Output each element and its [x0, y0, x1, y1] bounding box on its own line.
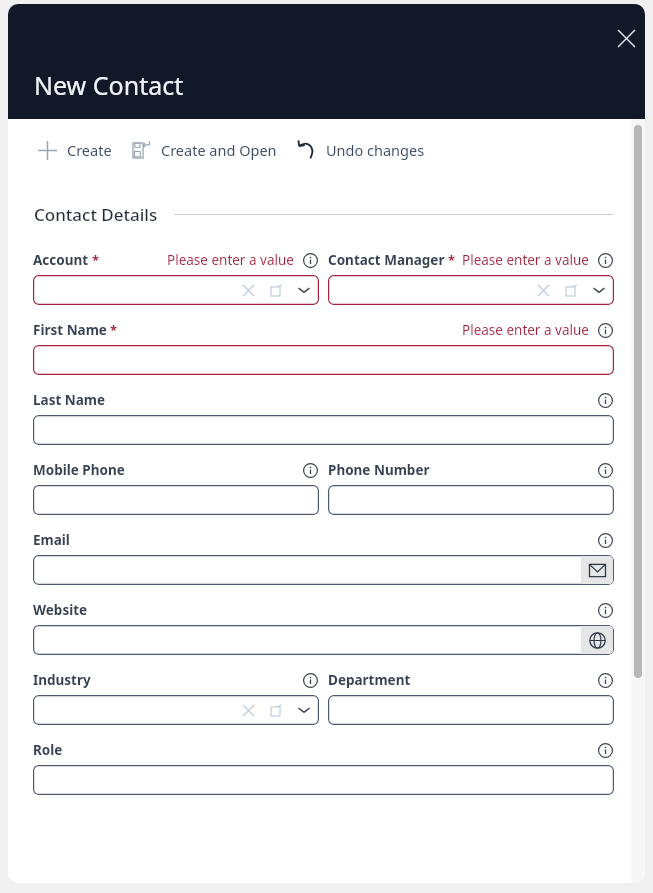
staticText: Website: [33, 601, 88, 619]
staticText: First Name: [33, 321, 107, 339]
button[interactable]: Create: [36, 135, 112, 165]
button[interactable]: Information: [596, 741, 614, 759]
button[interactable]: Information: [596, 601, 614, 619]
button[interactable]: Information: [596, 461, 614, 479]
staticText: Role: [33, 741, 63, 759]
button[interactable]: [33, 485, 319, 515]
staticText: Last Name: [33, 391, 106, 409]
staticText: *: [448, 251, 456, 269]
button[interactable]: Information: [301, 461, 319, 479]
staticText: Account: [33, 251, 89, 269]
button[interactable]: Information: [596, 671, 614, 689]
staticText: Create: [67, 140, 112, 160]
button[interactable]: Information: [596, 251, 614, 269]
button[interactable]: Email: [33, 555, 614, 585]
staticText: Industry: [33, 671, 91, 689]
button[interactable]: [328, 485, 614, 515]
button[interactable]: [33, 695, 319, 725]
button[interactable]: Create and Open: [130, 135, 277, 165]
button[interactable]: Undo changes: [295, 135, 425, 165]
staticText: Mobile Phone: [33, 461, 125, 479]
staticText: Contact Details: [34, 203, 158, 226]
staticText: *: [92, 251, 100, 269]
staticText: Undo changes: [326, 140, 425, 160]
staticText: Phone Number: [328, 461, 430, 479]
staticText: *: [110, 321, 118, 339]
staticText: Please enter a value: [462, 321, 589, 339]
button[interactable]: Close: [606, 18, 645, 58]
staticText: Please enter a value: [167, 251, 294, 269]
staticText: Email: [33, 531, 70, 549]
button[interactable]: [33, 765, 614, 795]
button[interactable]: Information: [596, 531, 614, 549]
button[interactable]: Information: [301, 251, 319, 269]
staticText: Please enter a value: [462, 251, 589, 269]
staticText: New Contact: [34, 68, 184, 102]
button[interactable]: Information: [596, 391, 614, 409]
button[interactable]: Open website: [33, 625, 614, 655]
staticText: Create and Open: [161, 140, 277, 160]
staticText: Department: [328, 671, 411, 689]
staticText: Contact Manager: [328, 251, 445, 269]
button[interactable]: Information: [301, 671, 319, 689]
button[interactable]: [328, 695, 614, 725]
button[interactable]: Information: [596, 321, 614, 339]
button[interactable]: Open website: [581, 626, 613, 654]
button[interactable]: [33, 345, 614, 375]
button[interactable]: Email: [581, 556, 613, 584]
button[interactable]: [328, 275, 614, 305]
button[interactable]: [33, 275, 319, 305]
button[interactable]: [33, 415, 614, 445]
